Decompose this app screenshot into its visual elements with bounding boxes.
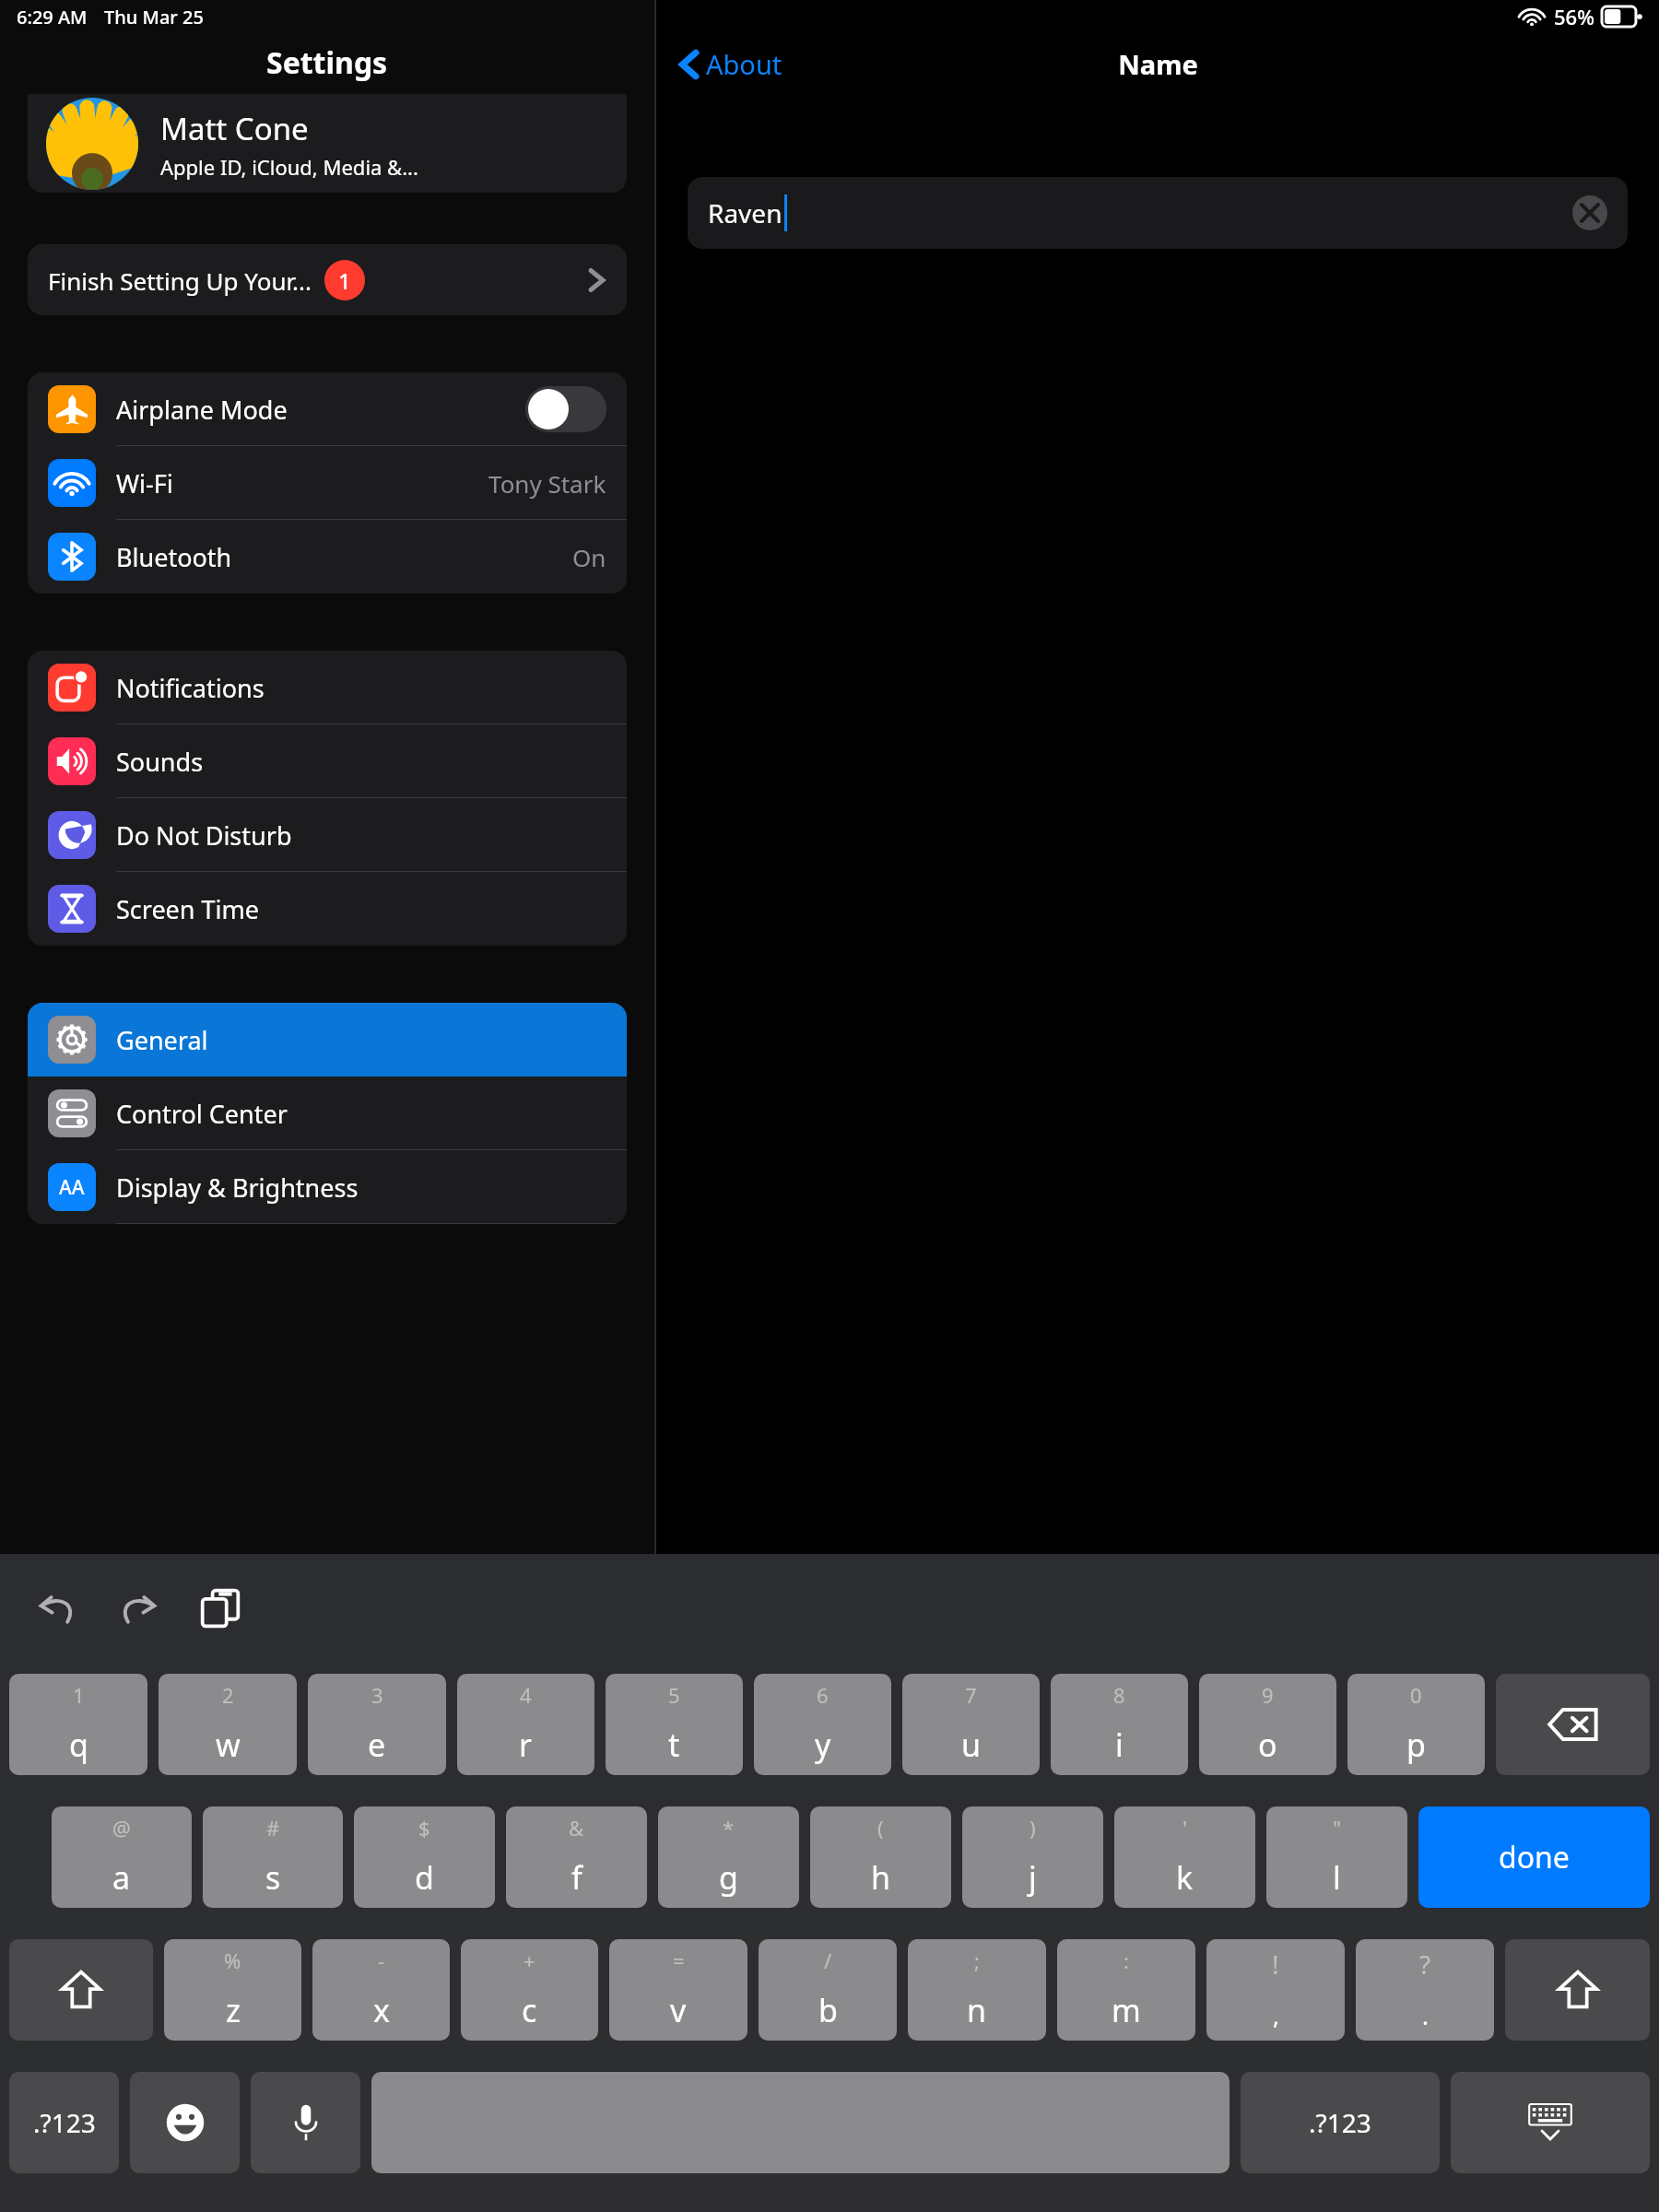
button[interactable]: Airplane Mode	[28, 372, 627, 446]
button[interactable]: AA	[28, 1150, 627, 1224]
button[interactable]: Clear text	[1572, 195, 1607, 230]
staticText: m	[1112, 1989, 1141, 2031]
button[interactable]: 5	[606, 1674, 743, 1775]
button[interactable]: #	[203, 1806, 343, 1908]
staticText: e	[368, 1724, 386, 1766]
button[interactable]: Paste	[190, 1578, 251, 1639]
staticText: About	[706, 46, 782, 82]
button[interactable]: Hide keyboard	[1451, 2072, 1650, 2173]
button[interactable]	[525, 386, 606, 432]
staticText: ,	[1273, 1999, 1279, 2031]
staticText: :	[1124, 1947, 1129, 1974]
staticText: done	[1499, 1837, 1570, 1877]
button[interactable]: @	[52, 1806, 192, 1908]
staticText: l	[1333, 1856, 1341, 1899]
staticText: &	[569, 1814, 584, 1841]
button[interactable]: ?	[1356, 1939, 1494, 2041]
button[interactable]: &	[506, 1806, 647, 1908]
button[interactable]: =	[609, 1939, 747, 2041]
button[interactable]: Notifications	[28, 651, 627, 724]
staticText: Sounds	[116, 745, 204, 779]
staticText: 3	[371, 1681, 383, 1709]
staticText: Control Center	[116, 1097, 288, 1131]
button[interactable]: Do Not Disturb	[28, 798, 627, 872]
button[interactable]: .?123	[1241, 2072, 1440, 2173]
staticText: r	[519, 1724, 533, 1766]
button[interactable]: Raven	[688, 177, 1628, 249]
button[interactable]: Screen Time	[28, 872, 627, 946]
staticText: ?	[1419, 1947, 1431, 1982]
button[interactable]: Shift	[1505, 1939, 1650, 2041]
staticText: p	[1406, 1724, 1426, 1766]
button[interactable]: 4	[457, 1674, 594, 1775]
button[interactable]: Shift	[9, 1939, 153, 2041]
staticText: 5	[668, 1681, 680, 1709]
button[interactable]: )	[962, 1806, 1103, 1908]
button[interactable]: 9	[1199, 1674, 1336, 1775]
staticText: General	[116, 1023, 208, 1057]
button[interactable]: %	[164, 1939, 301, 2041]
button[interactable]: 7	[902, 1674, 1040, 1775]
staticText: Settings	[266, 42, 388, 83]
button[interactable]: $	[354, 1806, 495, 1908]
button[interactable]: Bluetooth	[28, 520, 627, 594]
button[interactable]: Sounds	[28, 724, 627, 798]
button[interactable]: Delete	[1496, 1674, 1650, 1775]
staticText: 7	[965, 1681, 977, 1709]
button[interactable]: Control Center	[28, 1077, 627, 1150]
button[interactable]: 0	[1347, 1674, 1485, 1775]
button[interactable]: done	[1418, 1806, 1650, 1908]
staticText: f	[571, 1856, 582, 1899]
staticText: d	[415, 1856, 434, 1899]
staticText: %	[224, 1947, 241, 1974]
button[interactable]: +	[461, 1939, 598, 2041]
button[interactable]: Emoji	[130, 2072, 240, 2173]
staticText: q	[69, 1724, 88, 1766]
staticText: 4	[520, 1681, 532, 1709]
button[interactable]: About	[677, 42, 786, 86]
button[interactable]: ;	[908, 1939, 1046, 2041]
button[interactable]: Dictate	[251, 2072, 360, 2173]
button[interactable]: General	[28, 1003, 627, 1077]
button[interactable]: Redo	[107, 1578, 168, 1639]
staticText: Finish Setting Up Your...	[48, 265, 312, 297]
button[interactable]: '	[1114, 1806, 1255, 1908]
staticText: Notifications	[116, 671, 265, 705]
staticText: .?123	[33, 2105, 96, 2140]
staticText: Thu Mar 25	[104, 5, 204, 29]
button[interactable]: (	[810, 1806, 951, 1908]
button[interactable]: 1	[9, 1674, 147, 1775]
staticText: v	[670, 1989, 687, 2031]
staticText: 6:29 AM	[17, 5, 88, 29]
button[interactable]: Undo	[28, 1578, 88, 1639]
staticText: =	[673, 1947, 685, 1974]
button[interactable]: *	[658, 1806, 799, 1908]
staticText: u	[961, 1724, 982, 1766]
staticText: Apple ID, iCloud, Media &...	[160, 153, 418, 181]
button[interactable]: .?123	[9, 2072, 119, 2173]
staticText: !	[1272, 1947, 1279, 1982]
staticText: .	[1422, 1999, 1429, 2031]
button[interactable]: 2	[159, 1674, 297, 1775]
staticText: @	[112, 1814, 131, 1841]
staticText: 1	[338, 265, 351, 296]
button[interactable]: Space	[371, 2072, 1230, 2173]
staticText: g	[719, 1856, 738, 1899]
button[interactable]: "	[1266, 1806, 1407, 1908]
button[interactable]: 3	[308, 1674, 446, 1775]
staticText: h	[871, 1856, 891, 1899]
button[interactable]: Wi-Fi	[28, 446, 627, 520]
button[interactable]: /	[759, 1939, 897, 2041]
staticText: AA	[59, 1174, 85, 1201]
staticText: c	[522, 1989, 537, 2031]
staticText: Matt Cone	[160, 108, 309, 149]
staticText: Wi-Fi	[116, 466, 173, 500]
button[interactable]: -	[312, 1939, 450, 2041]
button[interactable]: :	[1057, 1939, 1195, 2041]
button[interactable]: Matt Cone	[28, 94, 627, 193]
staticText: z	[226, 1989, 241, 2031]
button[interactable]: 6	[754, 1674, 891, 1775]
button[interactable]: Finish Setting Up Your...	[28, 244, 627, 315]
button[interactable]: !	[1206, 1939, 1345, 2041]
button[interactable]: 8	[1051, 1674, 1188, 1775]
